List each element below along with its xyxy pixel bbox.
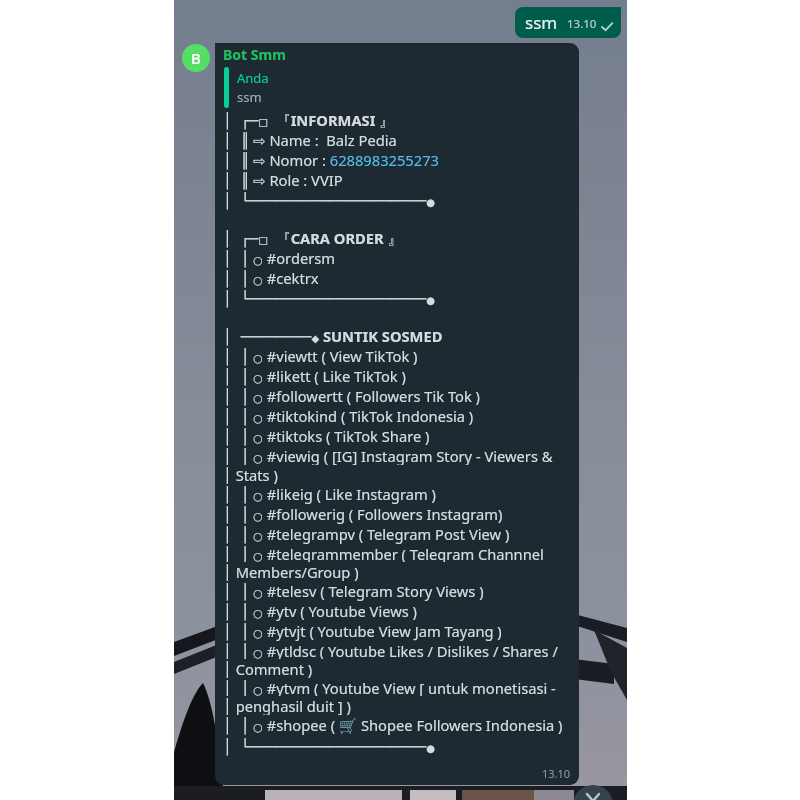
staticText: │ │ ○ #likett ( Like TikTok ) — [223, 366, 406, 386]
staticText: Anda — [237, 69, 269, 87]
staticText: │ Comment ) — [223, 659, 313, 678]
staticText: │ │ ○ #tiktoks ( TikTok Share ) — [223, 426, 430, 446]
staticText: │ ┌─◻ 『INFORMASI 』 — [223, 110, 394, 130]
staticText: │ Members/Group ) — [223, 562, 359, 581]
staticText: │ │ ○ #shopee ( 🛒 Shopee Followers Indon… — [223, 715, 563, 735]
staticText: │ └────────────────────● — [223, 736, 436, 756]
staticText: │ ┌─◻ 『CARA ORDER 』 — [223, 228, 403, 248]
staticText: │ │ ○ #likeig ( Like Instagram ) — [223, 484, 436, 504]
staticText: │ │ ○ #telesv ( Telegram Story Views ) — [223, 581, 484, 601]
staticText: 13.10 — [567, 16, 597, 32]
staticText: │ │ ○ #followerig ( Followers Instagram) — [223, 504, 503, 524]
staticText: ssm — [237, 88, 262, 106]
staticText: │ penghasil duit ] ) — [223, 696, 351, 715]
button[interactable]: ssm — [515, 7, 621, 38]
staticText: │ │ ○ #ytvjt ( Youtube View Jam Tayang ) — [223, 621, 502, 641]
staticText: │ │ ○ #ytvm ( Youtube View [ untuk monet… — [223, 678, 556, 696]
staticText: │ │ ○ #ordersm — [223, 248, 336, 268]
staticText: │ │ ○ #telegrammember ( Telegram Channne… — [223, 544, 544, 562]
staticText: │ │ ○ #tiktokind ( TikTok Indonesia ) — [223, 406, 474, 426]
button[interactable]: Profile photo — [182, 44, 210, 72]
staticText: ssm — [525, 11, 558, 34]
staticText: │ ║ ⇨ Nomor : 6288983255273 — [223, 150, 439, 170]
staticText: │ │ ○ #viewig ( [IG] Instagram Story - V… — [223, 446, 553, 465]
staticText: │ └────────────────────● — [223, 288, 436, 308]
button[interactable]: Scroll to bottom — [573, 785, 613, 800]
button[interactable]: Bot Smm — [215, 43, 579, 785]
staticText: │ │ ○ #followertt ( Followers Tik Tok ) — [223, 386, 481, 406]
staticText: B — [191, 48, 201, 68]
staticText: Bot Smm — [223, 45, 286, 64]
staticText: │ ║ ⇨ Name : Balz Pedia — [223, 130, 397, 150]
staticText: │ ║ ⇨ Role : VVIP — [223, 170, 343, 190]
staticText: │ Stats ) — [223, 465, 278, 484]
staticText: │ ────────◆ SUNTIK SOSMED — [223, 326, 443, 346]
staticText: │ │ ○ #cektrx — [223, 268, 319, 288]
staticText: 13.10 — [542, 766, 571, 781]
staticText: │ └────────────────────● — [223, 190, 436, 210]
staticText: │ │ ○ #ytv ( Youtube Views ) — [223, 601, 417, 621]
staticText: │ │ ○ #telegrampv ( Telegram Post View ) — [223, 524, 510, 544]
staticText: │ │ ○ #viewtt ( View TikTok ) — [223, 346, 418, 366]
staticText: │ │ ○ #ytldsc ( Youtube Likes / Dislikes… — [223, 641, 558, 659]
